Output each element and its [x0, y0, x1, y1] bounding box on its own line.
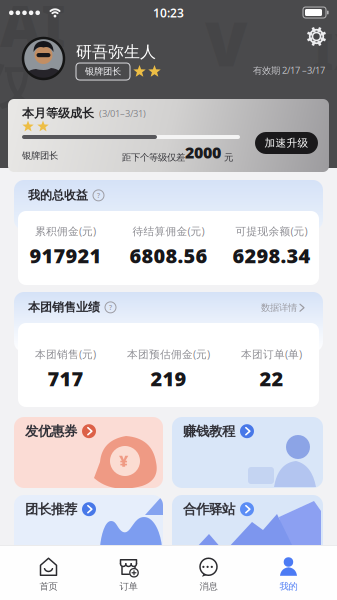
button[interactable]: 消息 — [168, 552, 248, 596]
staticText: ? — [109, 303, 112, 312]
button[interactable]: 设置 — [306, 26, 327, 47]
staticText: IX — [312, 18, 337, 83]
staticText: 6298.34 — [232, 242, 310, 269]
staticText: 加速升级 — [264, 136, 308, 149]
staticText: 我的总收益 — [28, 188, 88, 203]
button[interactable]: 赚钱教程 — [172, 417, 323, 488]
button[interactable]: 我的 — [248, 552, 328, 596]
staticText: 累积佣金(元) — [35, 224, 96, 238]
staticText: 10:23 — [153, 5, 184, 21]
staticText: 银牌团长 — [22, 150, 58, 161]
staticText: 本团预估佣金(元) — [127, 347, 210, 361]
button[interactable]: 业绩说明 — [105, 302, 116, 313]
staticText: 数据详情 — [261, 302, 297, 313]
staticText: 仅 — [0, 58, 34, 117]
staticText: 6808.56 — [129, 242, 207, 269]
staticText: 银牌团长 — [85, 66, 121, 77]
staticText: 本团销售(元) — [35, 347, 96, 361]
button[interactable]: 订单 — [88, 552, 168, 596]
staticText: ? — [97, 191, 100, 200]
staticText: 本团销售业绩 — [28, 300, 100, 315]
staticText: 本团订单(单) — [241, 347, 302, 361]
button[interactable]: 收益说明 — [93, 190, 104, 201]
staticText: 元 — [221, 151, 233, 163]
staticText: 2000 — [185, 142, 221, 163]
staticText: 917921 — [29, 242, 101, 269]
staticText: 待结算佣金(元) — [132, 224, 204, 238]
staticText: ¥ — [119, 450, 128, 471]
button[interactable]: ¥ — [14, 417, 163, 488]
staticText: 消息 — [199, 581, 217, 592]
staticText: AI — [0, 0, 66, 62]
button[interactable]: 加速升级 — [255, 132, 318, 154]
staticText: 219 — [150, 365, 186, 392]
button[interactable]: 合作驿站 — [172, 495, 323, 566]
staticText: 距下个等级仅差 — [122, 151, 185, 163]
staticText: 本月等级成长 — [22, 106, 94, 121]
button[interactable]: 团长推荐 — [14, 495, 163, 566]
staticText: 首页 — [39, 581, 57, 592]
staticText: 赚钱教程 — [183, 423, 235, 439]
staticText: 合作驿站 — [183, 501, 235, 517]
button[interactable]: 首页 — [8, 552, 88, 596]
staticText: 研吾弥生人 — [76, 42, 156, 62]
staticText: 团长推荐 — [25, 501, 77, 517]
staticText: 我的 — [279, 581, 297, 592]
staticText: 有效期 2/17 –3/17 — [253, 64, 325, 76]
button[interactable]: 数据详情 — [261, 302, 304, 313]
staticText: 订单 — [119, 581, 137, 592]
staticText: 717 — [47, 365, 83, 392]
staticText: (3/01–3/31) — [99, 107, 146, 120]
staticText: 22 — [259, 365, 283, 392]
staticText: 发优惠券 — [25, 423, 77, 439]
staticText: 可提现余额(元) — [235, 224, 307, 238]
